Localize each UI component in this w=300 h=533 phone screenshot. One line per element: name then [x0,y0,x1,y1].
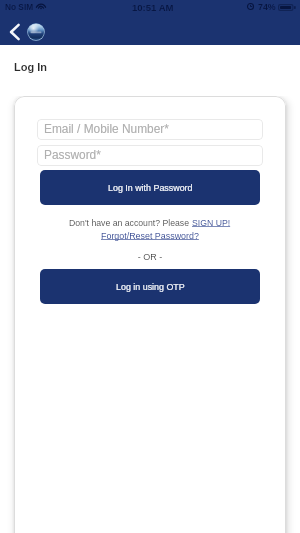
staticText: - OR - [14,252,286,262]
button[interactable]: Forgot/Reset Password? [101,231,199,241]
staticText: No SIM [5,2,34,11]
staticText: Password* [44,148,101,161]
staticText: SIGN UP! [192,218,231,228]
button[interactable]: Email / Mobile Number* [37,119,263,140]
staticText: 74% [258,2,276,12]
button[interactable]: Password* [37,145,263,166]
staticText: Log In [14,61,47,73]
button[interactable]: Log in using OTP [40,269,260,304]
staticText: Forgot/Reset Password? [101,231,199,241]
staticText: 10:51 AM [132,2,174,13]
staticText: Log In with Password [108,183,193,193]
staticText: Email / Mobile Number* [44,122,169,135]
button[interactable]: Log In with Password [40,170,260,205]
staticText: Don't have an account? Please [69,218,192,228]
button[interactable]: SIGN UP! [192,218,231,228]
staticText: Log in using OTP [116,282,185,292]
button[interactable]: App logo [27,23,45,41]
button[interactable]: Back [4,22,24,42]
